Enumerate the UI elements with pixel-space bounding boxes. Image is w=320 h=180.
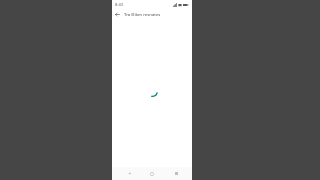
button[interactable]: Home	[145, 167, 159, 180]
staticText: Tra Đibm resnates	[124, 12, 161, 18]
button[interactable]: Back	[112, 9, 123, 20]
button[interactable]: Recents	[169, 167, 183, 180]
staticText: 8:43	[115, 2, 123, 7]
button[interactable]: Back	[122, 167, 136, 180]
